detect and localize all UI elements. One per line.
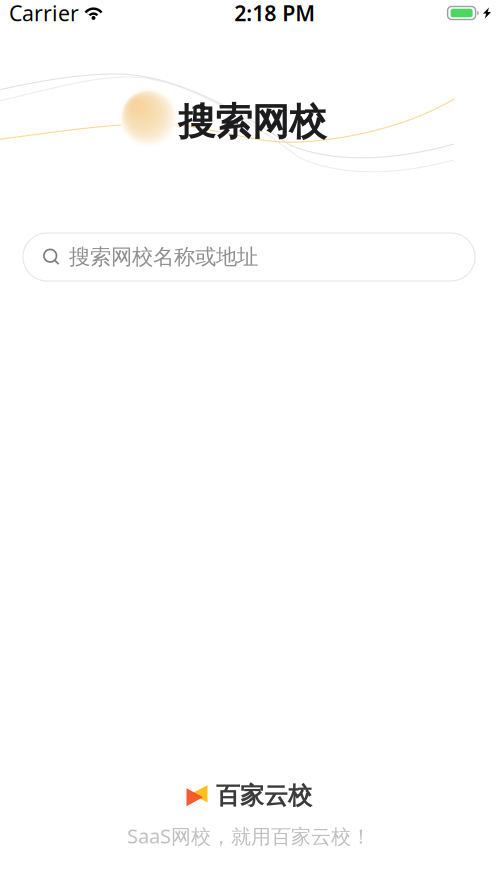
staticText: 百家云校 [216,781,312,810]
staticText: SaaS网校，就用百家云校！ [127,822,371,849]
staticText: 搜索网校名称或地址 [69,244,258,270]
staticText: 2:18 PM [234,0,315,27]
staticText: 搜索网校 [178,99,326,145]
button[interactable]: 搜索网校名称或地址 [23,233,475,281]
staticText: Carrier [9,0,79,27]
